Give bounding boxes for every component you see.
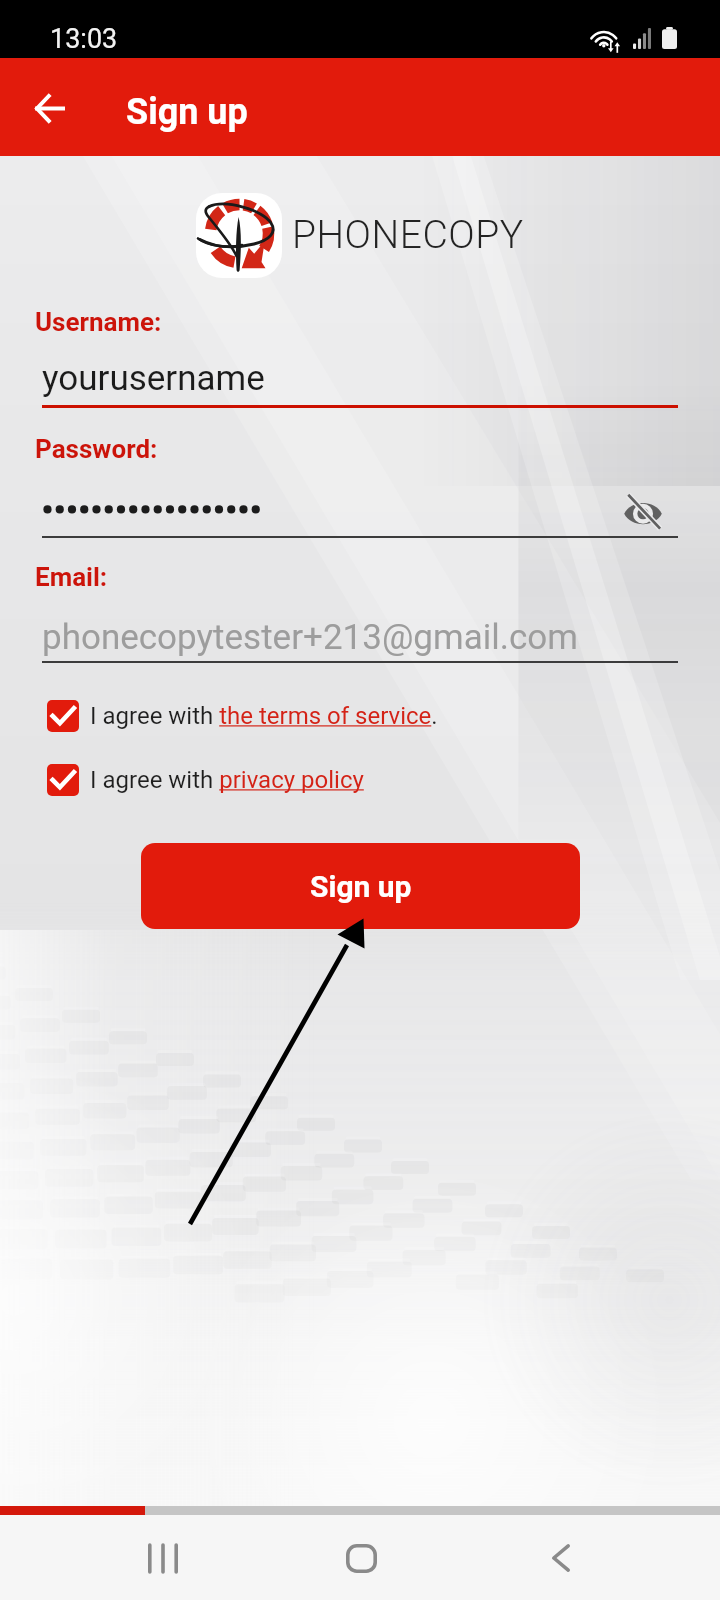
staticText: Password:: [35, 434, 158, 464]
button[interactable]: Recent apps: [126, 1522, 198, 1594]
button[interactable]: Show password: [614, 482, 672, 540]
staticText: I agree with privacy policy: [90, 766, 364, 794]
button[interactable]: Sign up: [141, 843, 580, 929]
button[interactable]: I agree with privacy policy: [35, 758, 535, 802]
staticText: phonecopytester+213@gmail.com: [42, 617, 578, 658]
button[interactable]: Navigate back: [22, 80, 78, 136]
staticText: Email:: [35, 562, 108, 592]
staticText: 13:03: [50, 23, 118, 55]
staticText: yourusername: [42, 358, 265, 399]
staticText: Sign up: [126, 91, 248, 133]
button[interactable]: Home: [325, 1522, 397, 1594]
staticText: Username:: [35, 307, 162, 337]
staticText: Sign up: [310, 869, 412, 904]
button[interactable]: I agree with the terms of service.: [35, 694, 535, 738]
staticText: I agree with the terms of service.: [90, 702, 438, 730]
staticText: PHONECOPY: [292, 212, 524, 258]
button[interactable]: Back: [525, 1522, 597, 1594]
